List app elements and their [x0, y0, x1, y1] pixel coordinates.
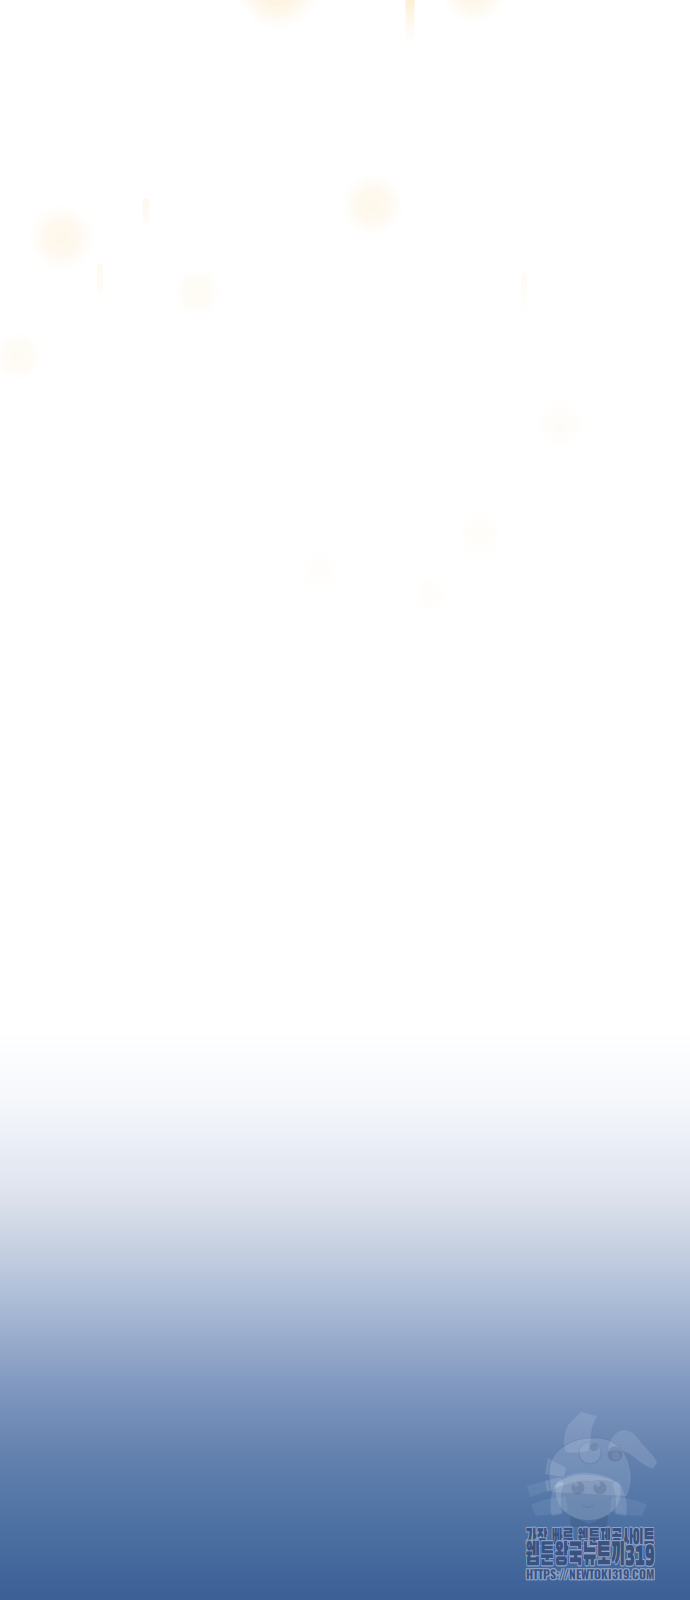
staticText: 가장 빠른 웹툰제공사이트 — [479, 1526, 690, 1549]
staticText: HTTPS://NEWTOKI319.COM — [527, 1565, 655, 1583]
staticText: HTTPS://NEWTOKI319.COM — [526, 1566, 654, 1584]
staticText: 가장 빠른 웹툰제공사이트 — [477, 1528, 690, 1551]
staticText: 웹툰왕국뉴토끼319 — [467, 1541, 690, 1573]
staticText: 웹툰왕국뉴토끼319 — [468, 1540, 690, 1572]
staticText: 가장 빠른 웹툰제공사이트 — [479, 1527, 690, 1550]
staticText: HTTPS://NEWTOKI319.COM — [527, 1564, 655, 1582]
staticText: 가장 빠른 웹툰제공사이트 — [477, 1527, 690, 1550]
staticText: 웹툰왕국뉴토끼319 — [466, 1540, 690, 1572]
staticText: HTTPS://NEWTOKI319.COM — [525, 1564, 653, 1582]
staticText: 웹툰왕국뉴토끼319 — [467, 1540, 690, 1572]
staticText: HTTPS://NEWTOKI319.COM — [525, 1565, 653, 1583]
staticText: 웹툰왕국뉴토끼319 — [467, 1539, 690, 1571]
staticText: 웹툰왕국뉴토끼319 — [466, 1541, 690, 1573]
staticText: 웹툰왕국뉴토끼319 — [468, 1539, 690, 1571]
staticText: 가장 빠른 웹툰제공사이트 — [478, 1527, 690, 1550]
staticText: HTTPS://NEWTOKI319.COM — [527, 1566, 655, 1584]
staticText: HTTPS://NEWTOKI319.COM — [526, 1564, 654, 1582]
staticText: 웹툰왕국뉴토끼319 — [466, 1539, 690, 1571]
staticText: 웹툰왕국뉴토끼319 — [468, 1541, 690, 1573]
staticText: 가장 빠른 웹툰제공사이트 — [479, 1528, 690, 1551]
staticText: 가장 빠른 웹툰제공사이트 — [478, 1528, 690, 1551]
staticText: HTTPS://NEWTOKI319.COM — [526, 1565, 654, 1583]
staticText: HTTPS://NEWTOKI319.COM — [525, 1566, 653, 1584]
staticText: 가장 빠른 웹툰제공사이트 — [478, 1526, 690, 1549]
staticText: 가장 빠른 웹툰제공사이트 — [477, 1526, 690, 1549]
